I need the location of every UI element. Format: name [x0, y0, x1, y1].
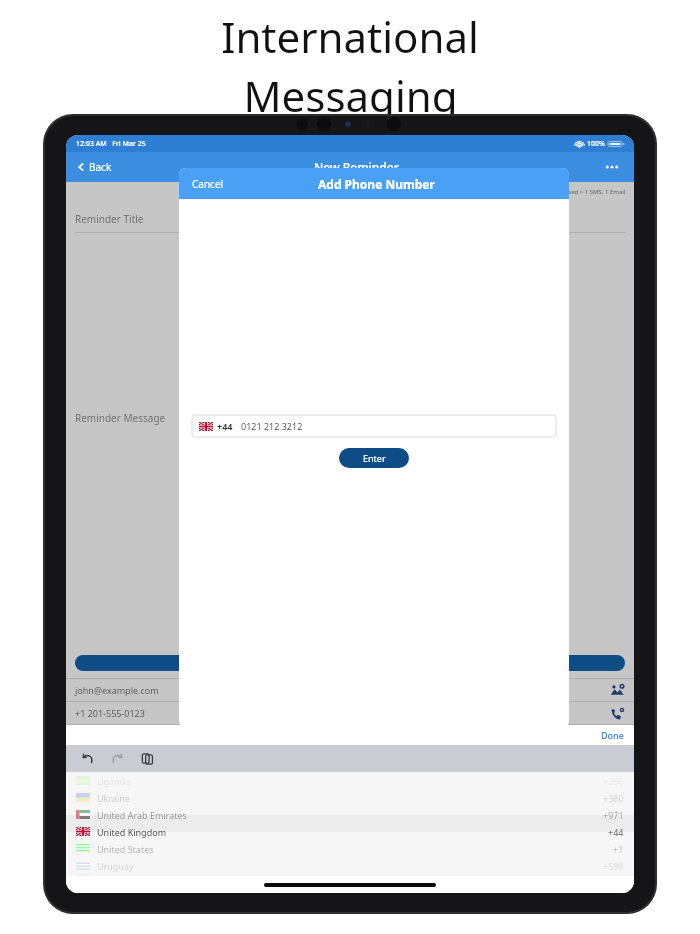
staticText: 0 Characters Used = 1 SMS, 1 Email	[527, 188, 626, 196]
staticText: 12:03 AM Fri Mar 25	[76, 139, 146, 149]
button[interactable]: john@example.com	[66, 679, 634, 701]
staticText: +1	[613, 843, 624, 855]
staticText: Reminder Title	[75, 212, 144, 226]
staticText: International	[221, 8, 479, 65]
button[interactable]: +1 201-555-0123	[66, 702, 634, 724]
button[interactable]: Paste	[138, 749, 157, 768]
staticText: Messaging	[243, 67, 458, 124]
staticText: New Reminder	[314, 159, 399, 175]
button[interactable]: +44	[192, 415, 556, 437]
staticText: United States	[97, 843, 154, 855]
staticText: 0121 212 3212	[241, 420, 303, 432]
staticText: Enter	[363, 452, 386, 464]
staticText: Uruguay	[97, 860, 134, 872]
staticText: Ukraine	[97, 792, 130, 804]
staticText: Uganda	[97, 775, 131, 787]
button[interactable]: United Kingdom	[66, 823, 634, 840]
staticText: +380	[603, 792, 624, 804]
button[interactable]: Uruguay	[66, 857, 634, 874]
staticText: 100%	[587, 139, 605, 149]
staticText: Back	[89, 160, 112, 174]
button[interactable]: More options	[599, 159, 625, 175]
other: Add phone number	[610, 706, 625, 721]
button[interactable]: Done	[591, 726, 634, 744]
button[interactable]: Cancel	[190, 173, 226, 195]
button[interactable]	[75, 655, 625, 671]
staticText: United Arab Emirates	[97, 809, 187, 821]
button[interactable]: Redo	[108, 749, 127, 768]
staticText: +971	[603, 809, 624, 821]
staticText: Reminder Message	[75, 411, 166, 425]
button[interactable]: Back	[75, 156, 114, 178]
other: Add image	[610, 683, 625, 698]
staticText: +44	[217, 420, 233, 432]
staticText: +1 201-555-0123	[75, 707, 145, 719]
button[interactable]: Undo	[78, 749, 97, 768]
staticText: +598	[603, 860, 624, 872]
staticText: +44	[608, 826, 624, 838]
staticText: john@example.com	[75, 684, 159, 696]
staticText: Done	[601, 729, 624, 741]
staticText: United Kingdom	[97, 826, 167, 838]
button[interactable]: United Arab Emirates	[66, 806, 634, 823]
button[interactable]: Ukraine	[66, 789, 634, 806]
button[interactable]: Enter	[339, 448, 409, 468]
staticText: +256	[603, 775, 624, 787]
staticText: Add Phone Number	[318, 176, 435, 192]
staticText: Cancel	[192, 177, 224, 191]
button[interactable]: United States	[66, 840, 634, 857]
